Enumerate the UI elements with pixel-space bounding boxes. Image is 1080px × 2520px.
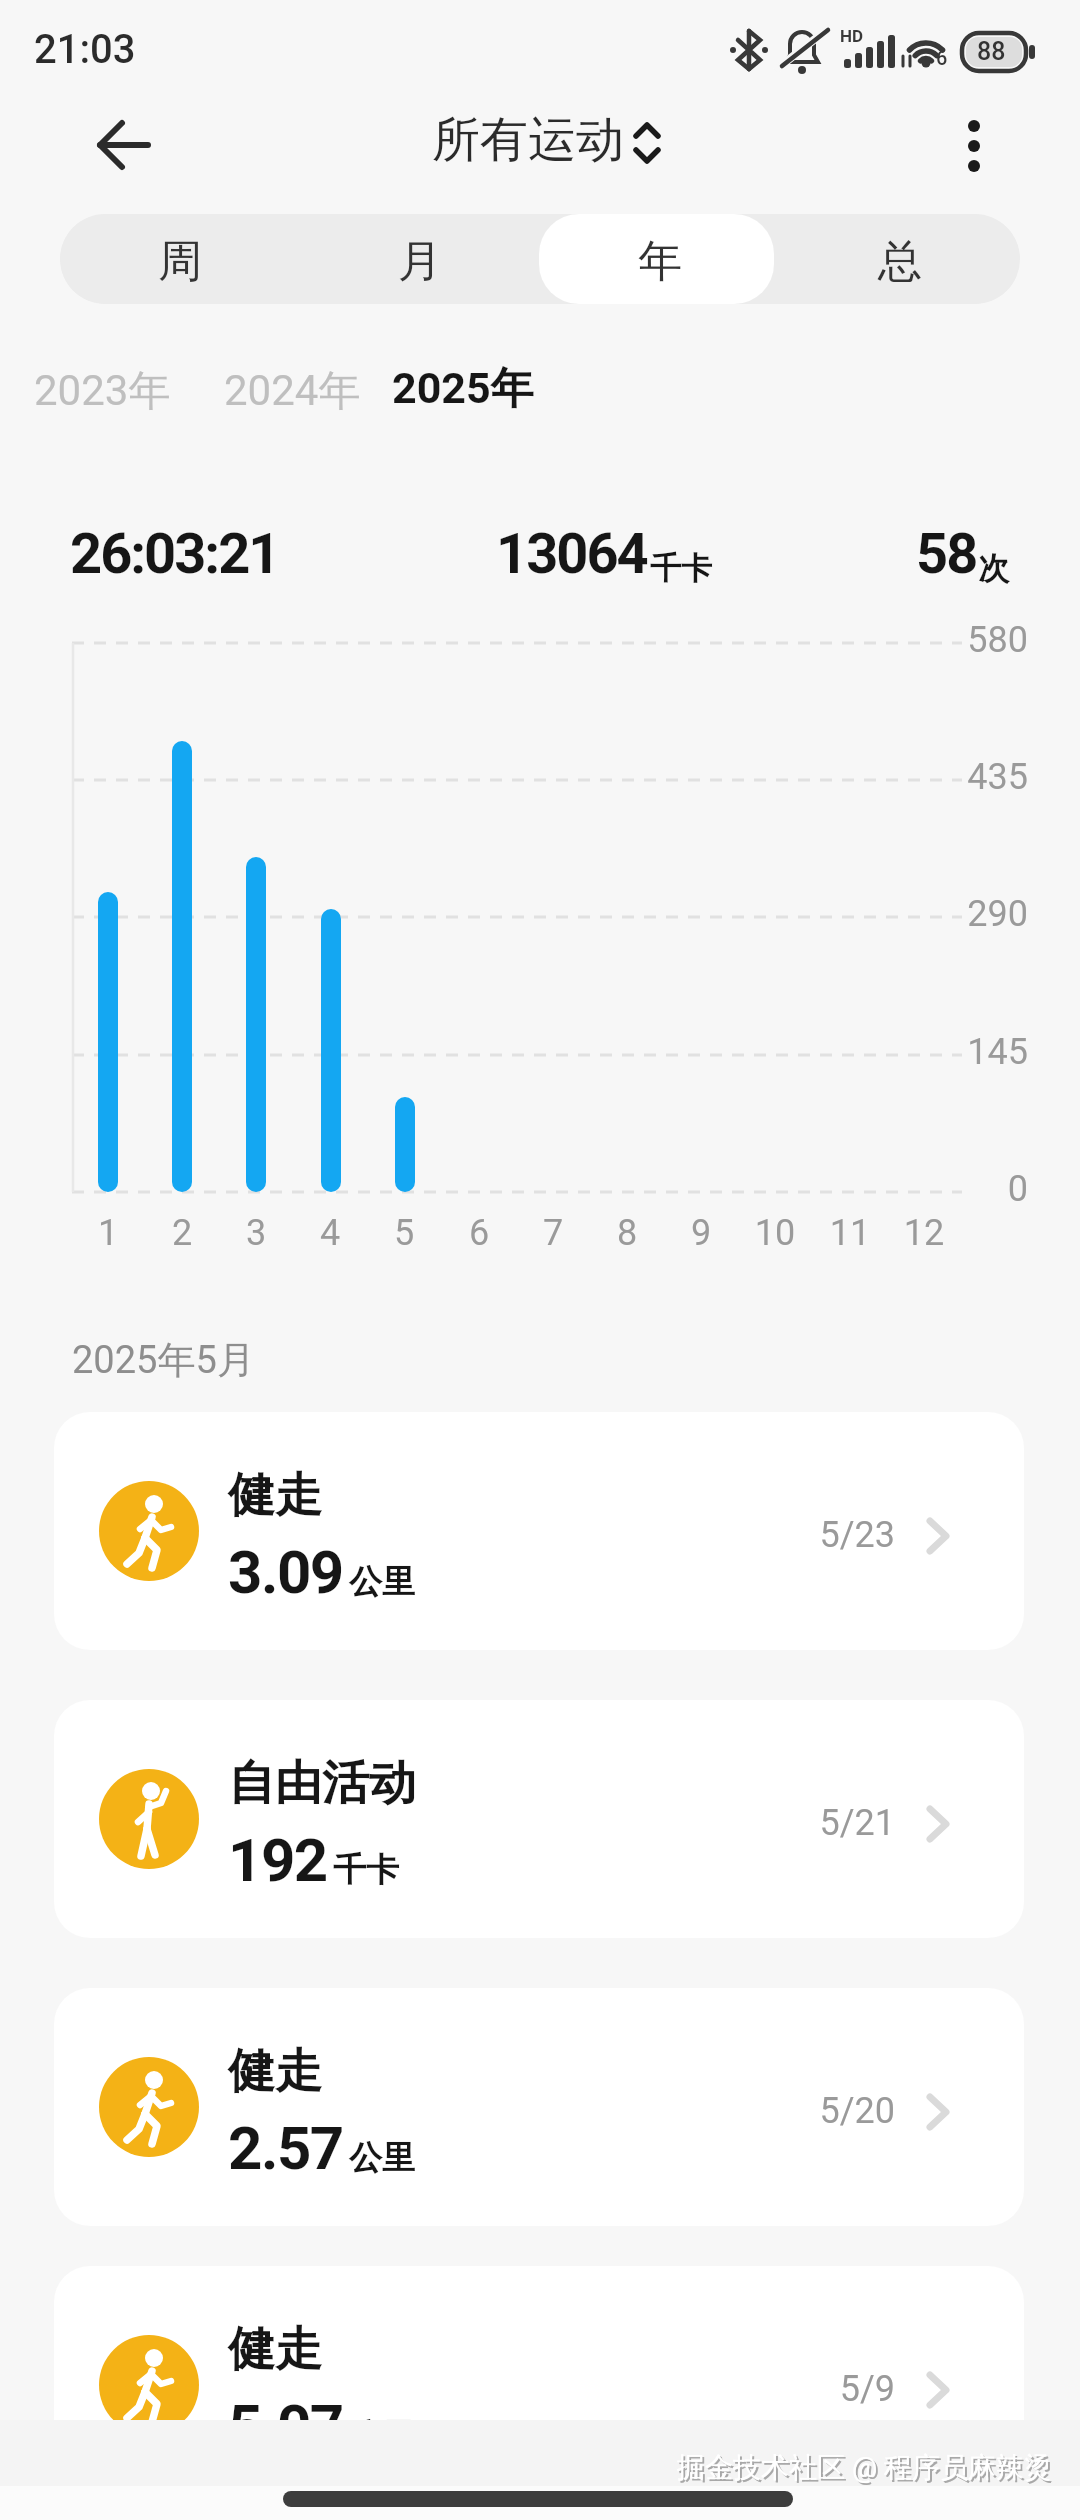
- staticText: 6: [444, 1212, 514, 1254]
- staticText: 健走: [228, 1466, 322, 1525]
- staticText: 5/9: [735, 2368, 895, 2410]
- button[interactable]: [944, 104, 1004, 188]
- staticText: 192: [228, 1825, 327, 1895]
- staticText: 10: [740, 1212, 810, 1254]
- button[interactable]: 健走: [54, 1412, 1024, 1650]
- staticText: 6: [936, 46, 948, 69]
- staticText: 3.09: [228, 1537, 343, 1607]
- staticText: 5/20: [735, 2090, 895, 2132]
- staticText: 2023年: [34, 365, 171, 418]
- button[interactable]: 健走: [54, 2266, 1024, 2504]
- staticText: 5/23: [735, 1514, 895, 1556]
- staticText: HD: [840, 26, 864, 46]
- button[interactable]: 2025年: [388, 358, 538, 418]
- button[interactable]: 2023年: [30, 360, 190, 418]
- staticText: 12: [889, 1212, 959, 1254]
- staticText: 掘金技术社区 @ 程序员麻辣烫: [600, 2450, 1052, 2485]
- staticText: 总: [878, 234, 922, 289]
- staticText: 3: [221, 1212, 291, 1254]
- staticText: 公里: [349, 2137, 415, 2179]
- button[interactable]: [80, 110, 164, 182]
- staticText: 9: [666, 1212, 736, 1254]
- staticText: 26:03:21: [70, 521, 279, 587]
- staticText: 435: [958, 756, 1028, 798]
- staticText: 2024年: [224, 365, 361, 418]
- button[interactable]: 健走: [54, 1988, 1024, 2226]
- staticText: 公里: [349, 2415, 415, 2457]
- staticText: 88: [977, 37, 1006, 66]
- staticText: 所有运动: [432, 110, 624, 170]
- staticText: 1: [73, 1212, 143, 1254]
- staticText: 公里: [349, 1561, 415, 1603]
- staticText: 2.57: [228, 2113, 343, 2183]
- staticText: 580: [958, 619, 1028, 661]
- staticText: 145: [958, 1031, 1028, 1073]
- staticText: 2: [147, 1212, 217, 1254]
- button[interactable]: 2024年: [220, 360, 380, 418]
- staticText: 掘金技术社区 @ 程序员麻辣烫: [602, 2452, 1054, 2487]
- staticText: 13064: [496, 521, 647, 587]
- staticText: 2025年5月: [72, 1336, 255, 1384]
- staticText: 健走: [228, 2042, 322, 2101]
- staticText: 千卡: [650, 549, 712, 588]
- staticText: 年: [638, 234, 682, 289]
- staticText: 月: [398, 234, 442, 289]
- staticText: 5.07: [228, 2391, 343, 2461]
- staticText: 0: [958, 1168, 1028, 1210]
- staticText: 4: [295, 1212, 365, 1254]
- button[interactable]: 年: [540, 214, 780, 304]
- staticText: 千卡: [333, 1849, 399, 1891]
- staticText: 健走: [228, 2320, 322, 2379]
- button[interactable]: 月: [300, 214, 540, 304]
- button[interactable]: 总: [780, 214, 1020, 304]
- staticText: 5: [369, 1212, 439, 1254]
- staticText: 次: [978, 549, 1009, 588]
- staticText: 自由活动: [228, 1754, 416, 1813]
- staticText: 7: [518, 1212, 588, 1254]
- button[interactable]: 周: [60, 214, 300, 304]
- staticText: 58: [916, 521, 977, 587]
- staticText: 周: [158, 234, 202, 289]
- staticText: 11: [815, 1212, 885, 1254]
- button[interactable]: 自由活动: [54, 1700, 1024, 1938]
- staticText: 290: [958, 893, 1028, 935]
- staticText: 21:03: [34, 26, 136, 73]
- button[interactable]: 所有运动: [423, 106, 673, 178]
- staticText: 8: [592, 1212, 662, 1254]
- staticText: 2025年: [392, 362, 534, 416]
- staticText: 5/21: [735, 1802, 895, 1844]
